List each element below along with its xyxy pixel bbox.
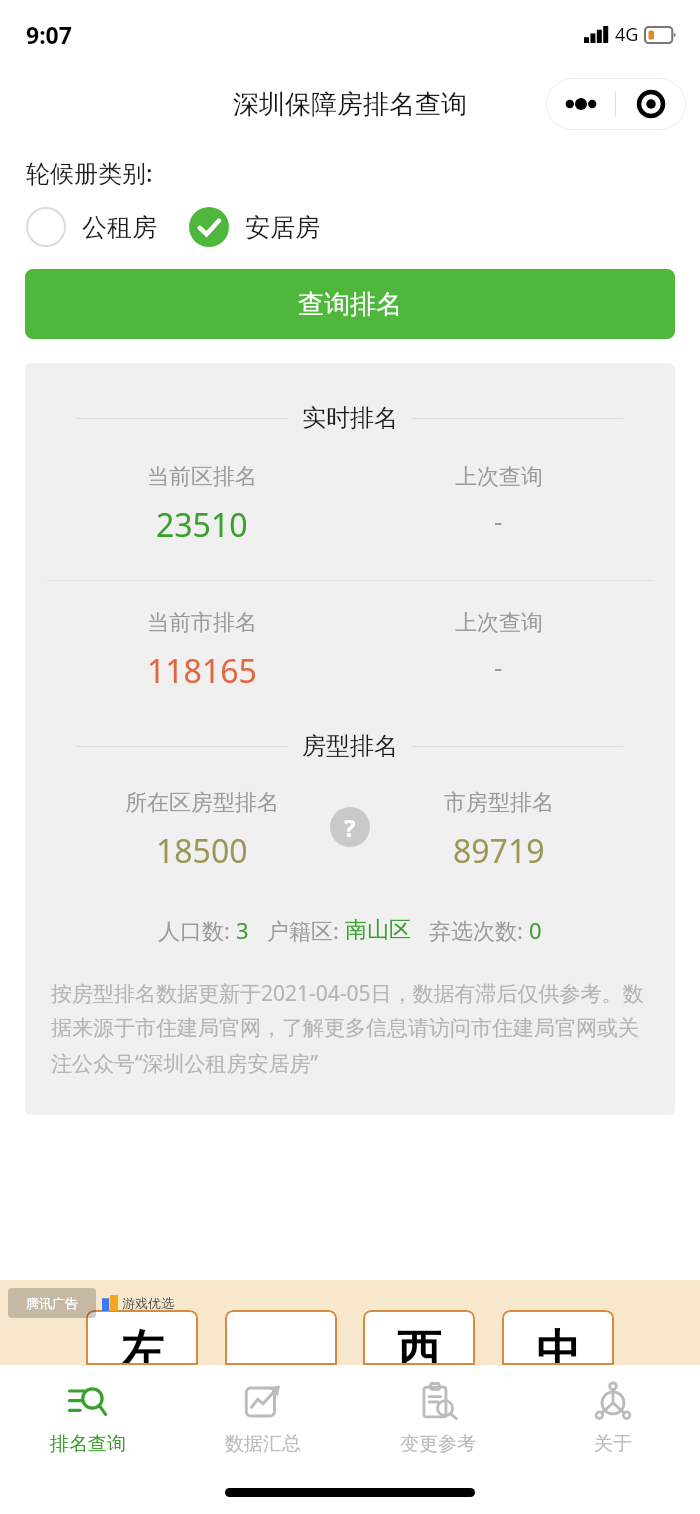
staticText: 人口数: xyxy=(158,915,236,945)
staticText: 查询排名 xyxy=(298,288,402,321)
button[interactable]: 公租房 xyxy=(26,207,157,247)
button[interactable]: 排名查询 xyxy=(0,1365,175,1470)
staticText: 当前市排名 xyxy=(147,609,257,637)
staticText: ? xyxy=(344,811,356,844)
staticText: 深圳保障房排名查询 xyxy=(233,88,467,121)
button[interactable]: Help xyxy=(330,807,370,847)
staticText: 市房型排名 xyxy=(444,789,554,817)
staticText: 当前区排名 xyxy=(147,463,257,491)
button[interactable]: 安居房 xyxy=(189,207,320,247)
staticText: 轮候册类别: xyxy=(26,156,153,189)
staticText: 排名查询 xyxy=(50,1432,126,1456)
staticText: 房型排名 xyxy=(302,731,398,761)
button[interactable]: 关于 xyxy=(525,1365,700,1470)
staticText: 左 xyxy=(120,1324,164,1365)
staticText: 上次查询 xyxy=(455,463,543,491)
staticText: 变更参考 xyxy=(400,1432,476,1456)
staticText: 4G xyxy=(615,22,639,47)
staticText: 9:07 xyxy=(26,19,72,50)
staticText: 弃选次数: xyxy=(429,915,529,945)
staticText: 按房型排名数据更新于2021-04-05日，数据有滞后仅供参考。数据来源于市住建… xyxy=(51,979,649,1077)
staticText: 安居房 xyxy=(245,212,320,243)
staticText: 所在区房型排名 xyxy=(125,789,279,817)
staticText: 0 xyxy=(529,915,542,945)
staticText: 腾讯广告 xyxy=(26,1295,78,1311)
staticText: 18500 xyxy=(156,829,248,873)
button[interactable]: Close xyxy=(616,78,686,130)
staticText: 公租房 xyxy=(82,212,157,243)
button[interactable]: 查询排名 xyxy=(25,269,675,339)
staticText: 数据汇总 xyxy=(225,1432,301,1456)
staticText: 中 xyxy=(536,1324,580,1365)
button[interactable]: 数据汇总 xyxy=(175,1365,350,1470)
staticText: 实时排名 xyxy=(302,403,398,433)
staticText: 89719 xyxy=(453,829,545,873)
staticText: 3 xyxy=(236,915,249,945)
staticText: - xyxy=(494,649,503,684)
staticText: 上次查询 xyxy=(455,609,543,637)
staticText: 户籍区: xyxy=(267,915,345,945)
staticText: 游戏优选 xyxy=(122,1295,174,1311)
staticText: 西 xyxy=(397,1324,441,1365)
staticText: - xyxy=(494,503,503,538)
staticText: 23510 xyxy=(156,503,248,547)
staticText: 118165 xyxy=(147,649,257,693)
button[interactable]: More xyxy=(546,78,615,130)
staticText: 关于 xyxy=(594,1432,632,1456)
button[interactable]: 变更参考 xyxy=(350,1365,525,1470)
staticText: 南山区 xyxy=(345,916,411,944)
